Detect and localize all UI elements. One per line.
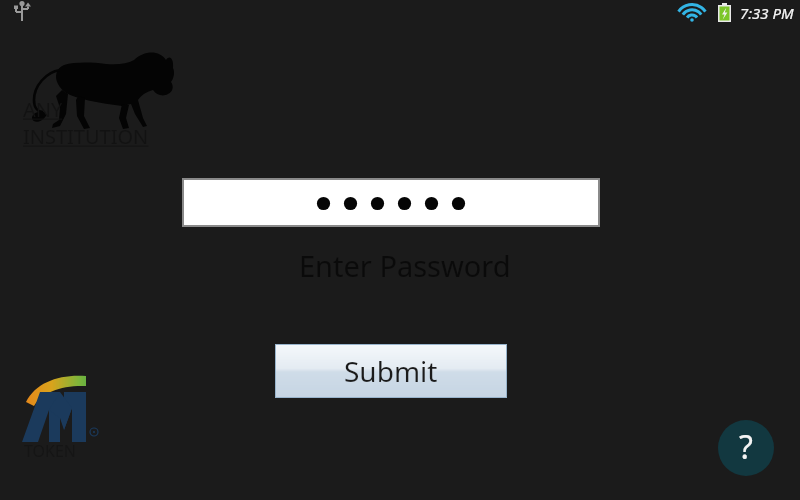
button[interactable]: Help [718, 420, 774, 476]
staticText: ANY INSTITUTION [23, 96, 183, 150]
staticText: Enter Password [299, 246, 511, 285]
staticText: TOKEN [24, 440, 77, 462]
staticText: Submit [344, 352, 438, 390]
staticText: 7:33 PM [740, 3, 794, 23]
button[interactable] [182, 178, 600, 227]
button[interactable]: Submit [275, 344, 507, 398]
staticText: ? [739, 425, 753, 469]
